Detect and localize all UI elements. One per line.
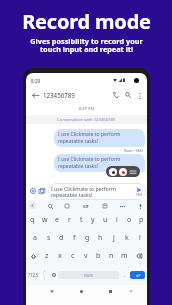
staticText: d bbox=[59, 233, 64, 243]
staticText: w bbox=[42, 215, 48, 225]
button[interactable]: q bbox=[26, 211, 39, 229]
staticText: j bbox=[113, 233, 115, 243]
staticText: o bbox=[127, 215, 132, 225]
button[interactable]: t bbox=[75, 211, 87, 229]
button[interactable]: Emoji bbox=[49, 265, 58, 285]
button[interactable]: Enter bbox=[130, 271, 145, 279]
button[interactable]: ° bbox=[40, 265, 49, 285]
button[interactable]: Record bbox=[109, 168, 117, 176]
button[interactable]: Hide keyboard bbox=[125, 285, 137, 297]
staticText: y bbox=[91, 215, 95, 225]
button[interactable]: l bbox=[133, 229, 146, 247]
button[interactable]: I use Clickmate to perform repeatable ta… bbox=[54, 154, 145, 172]
button[interactable]: n bbox=[105, 247, 118, 265]
button[interactable]: m bbox=[118, 247, 131, 265]
staticText: Record mode bbox=[22, 8, 151, 35]
button[interactable]: z bbox=[41, 247, 53, 265]
button[interactable]: GIF bbox=[81, 201, 91, 211]
staticText: m bbox=[121, 251, 128, 261]
staticText: Gives possibility to record your touch i… bbox=[30, 36, 143, 55]
button[interactable]: Back bbox=[29, 89, 41, 101]
button[interactable]: x bbox=[53, 247, 66, 265]
button[interactable]: d bbox=[55, 229, 68, 247]
button[interactable]: Voice input bbox=[136, 202, 144, 210]
button[interactable]: More options bbox=[134, 90, 145, 101]
button[interactable]: Clipboard bbox=[101, 202, 109, 210]
staticText: s bbox=[47, 233, 51, 243]
staticText: EN-PL bbox=[84, 273, 94, 278]
button[interactable]: I use Clickmate to perform repeatable ta… bbox=[48, 183, 146, 200]
staticText: l bbox=[139, 233, 141, 243]
button[interactable]: g bbox=[81, 229, 94, 247]
button[interactable]: w bbox=[39, 211, 51, 229]
staticText: , bbox=[44, 274, 46, 280]
staticText: i bbox=[116, 215, 118, 225]
button[interactable]: p bbox=[135, 211, 147, 229]
button[interactable]: Shift bbox=[26, 247, 41, 265]
button[interactable]: Recents bbox=[104, 285, 116, 297]
button[interactable]: Back bbox=[46, 285, 58, 297]
staticText: Now • SMS bbox=[26, 148, 143, 153]
staticText: c bbox=[71, 251, 75, 261]
button[interactable]: ?123 bbox=[26, 265, 40, 285]
button[interactable]: b bbox=[92, 247, 105, 265]
button[interactable]: j bbox=[107, 229, 120, 247]
button[interactable]: i bbox=[111, 211, 123, 229]
button[interactable]: I use Clickmate to perform repeatable ta… bbox=[54, 129, 145, 147]
button[interactable]: Space bbox=[58, 271, 119, 279]
staticText: r bbox=[68, 215, 71, 225]
staticText: p bbox=[139, 215, 144, 225]
staticText: g bbox=[85, 233, 90, 243]
button[interactable]: s bbox=[42, 229, 55, 247]
button[interactable]: . bbox=[119, 265, 130, 285]
button[interactable]: Backspace bbox=[131, 247, 147, 265]
button[interactable]: v bbox=[79, 247, 92, 265]
button[interactable]: c bbox=[66, 247, 79, 265]
button[interactable]: e bbox=[51, 211, 63, 229]
button[interactable]: Search bbox=[122, 89, 134, 101]
staticText: GIF bbox=[83, 204, 89, 209]
button[interactable]: a bbox=[28, 229, 42, 247]
button[interactable]: f bbox=[68, 229, 81, 247]
staticText: f bbox=[73, 233, 76, 243]
staticText: ° bbox=[44, 270, 46, 274]
staticText: k bbox=[125, 233, 129, 243]
staticText: I use Clickmate to perform repeatable ta… bbox=[51, 185, 133, 199]
staticText: u bbox=[103, 215, 108, 225]
staticText: Conversation with 123456789 bbox=[57, 117, 116, 123]
staticText: ?123 bbox=[28, 272, 38, 278]
button[interactable]: Stickers bbox=[63, 202, 71, 210]
button[interactable]: Search bbox=[46, 202, 54, 210]
button[interactable]: u bbox=[99, 211, 111, 229]
button[interactable]: o bbox=[123, 211, 135, 229]
button[interactable]: k bbox=[120, 229, 133, 247]
staticText: I use Clickmate to perform repeatable ta… bbox=[58, 156, 121, 170]
staticText: h bbox=[98, 233, 103, 243]
button[interactable]: r bbox=[63, 211, 75, 229]
button[interactable]: Call bbox=[110, 89, 122, 101]
staticText: 8:29 bbox=[31, 78, 41, 84]
staticText: v bbox=[84, 251, 88, 261]
staticText: x bbox=[58, 251, 62, 261]
staticText: n bbox=[109, 251, 114, 261]
staticText: b bbox=[96, 251, 101, 261]
button[interactable]: h bbox=[94, 229, 107, 247]
staticText: 8:27 PM bbox=[26, 106, 147, 112]
button[interactable]: Collapse bbox=[29, 202, 36, 209]
button[interactable]: Stop recording bbox=[119, 168, 127, 176]
staticText: I use Clickmate to perform repeatable ta… bbox=[58, 131, 121, 145]
button[interactable]: More bbox=[118, 202, 126, 210]
staticText: e bbox=[55, 215, 59, 225]
button[interactable]: Home bbox=[75, 285, 87, 297]
staticText: . bbox=[124, 272, 126, 279]
button[interactable]: Send SMS bbox=[133, 187, 145, 197]
button[interactable]: Menu bbox=[129, 168, 137, 176]
button[interactable]: Attach bbox=[29, 187, 37, 195]
staticText: t bbox=[80, 215, 83, 225]
staticText: 123456789 bbox=[43, 91, 75, 99]
button[interactable]: Gallery bbox=[38, 187, 46, 195]
staticText: q bbox=[30, 215, 35, 225]
staticText: z bbox=[45, 251, 49, 261]
staticText: SMS bbox=[136, 193, 143, 197]
button[interactable]: y bbox=[87, 211, 99, 229]
